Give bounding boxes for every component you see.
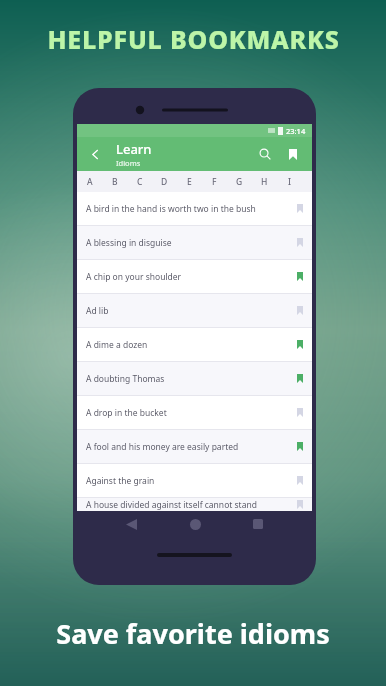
staticText: E bbox=[187, 176, 192, 188]
button[interactable]: Search bbox=[253, 142, 277, 166]
staticText: A blessing in disguise bbox=[86, 237, 297, 249]
staticText: Idioms bbox=[116, 158, 141, 168]
button[interactable]: A drop in the bucket bbox=[77, 396, 312, 429]
staticText: A fool and his money are easily parted bbox=[86, 441, 297, 453]
staticText: A doubting Thomas bbox=[86, 373, 297, 385]
button[interactable]: Home bbox=[185, 514, 205, 534]
button[interactable]: Against the grain bbox=[77, 464, 312, 497]
staticText: G bbox=[236, 176, 243, 188]
button[interactable]: A doubting Thomas bbox=[77, 362, 312, 395]
staticText: A chip on your shoulder bbox=[86, 271, 297, 283]
button[interactable]: G bbox=[227, 171, 252, 192]
staticText: Against the grain bbox=[86, 475, 297, 487]
button[interactable]: A bird in the hand is worth two in the b… bbox=[77, 192, 312, 225]
button[interactable]: F bbox=[202, 171, 227, 192]
button[interactable]: C bbox=[127, 171, 152, 192]
button[interactable]: D bbox=[152, 171, 177, 192]
button[interactable]: Back bbox=[121, 514, 141, 534]
staticText: 23:14 bbox=[286, 126, 306, 136]
staticText: F bbox=[212, 176, 217, 188]
staticText: B bbox=[112, 176, 118, 188]
staticText: Save favorite idioms bbox=[56, 615, 330, 652]
button[interactable]: E bbox=[177, 171, 202, 192]
staticText: A dime a dozen bbox=[86, 339, 297, 351]
staticText: I bbox=[288, 176, 292, 188]
staticText: HELPFUL BOOKMARKS bbox=[47, 22, 340, 56]
button[interactable]: A dime a dozen bbox=[77, 328, 312, 361]
button[interactable]: H bbox=[252, 171, 277, 192]
button[interactable]: A chip on your shoulder bbox=[77, 260, 312, 293]
staticText: Ad lib bbox=[86, 305, 297, 317]
staticText: D bbox=[161, 176, 168, 188]
staticText: Learn bbox=[116, 140, 152, 158]
button[interactable]: I bbox=[277, 171, 302, 192]
button[interactable]: A house divided against itself cannot st… bbox=[77, 498, 312, 511]
button[interactable]: A blessing in disguise bbox=[77, 226, 312, 259]
staticText: A house divided against itself cannot st… bbox=[86, 499, 297, 511]
staticText: A bbox=[87, 176, 93, 188]
button[interactable]: A fool and his money are easily parted bbox=[77, 430, 312, 463]
button[interactable]: Bookmarks bbox=[281, 142, 305, 166]
button[interactable]: Recents bbox=[248, 514, 268, 534]
button[interactable]: B bbox=[102, 171, 127, 192]
staticText: H bbox=[261, 176, 268, 188]
button[interactable]: Back bbox=[84, 143, 106, 165]
button[interactable]: Ad lib bbox=[77, 294, 312, 327]
button[interactable]: A bbox=[77, 171, 102, 192]
staticText: C bbox=[137, 176, 143, 188]
staticText: A drop in the bucket bbox=[86, 407, 297, 419]
staticText: A bird in the hand is worth two in the b… bbox=[86, 203, 297, 215]
